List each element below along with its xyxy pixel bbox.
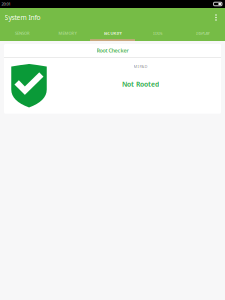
button[interactable]: DISPLAY (180, 27, 225, 41)
staticText: Root Checker (96, 47, 128, 54)
staticText: 20:01 (1, 1, 10, 7)
staticText: Not Rooted (122, 80, 159, 89)
button[interactable]: MEMORY (45, 27, 90, 41)
staticText: DISPLAY (195, 30, 209, 36)
button[interactable]: SENSOR (0, 27, 45, 41)
staticText: System Info (4, 13, 40, 22)
button[interactable]: SECURITY (90, 27, 135, 41)
staticText: MI PAD (133, 64, 147, 69)
staticText: MEMORY (58, 30, 76, 36)
staticText: SECURITY (103, 30, 121, 36)
button[interactable]: More options (207, 8, 224, 27)
button[interactable]: CODE (135, 27, 180, 41)
staticText: CODE (152, 30, 162, 36)
staticText: SENSOR (15, 30, 30, 36)
